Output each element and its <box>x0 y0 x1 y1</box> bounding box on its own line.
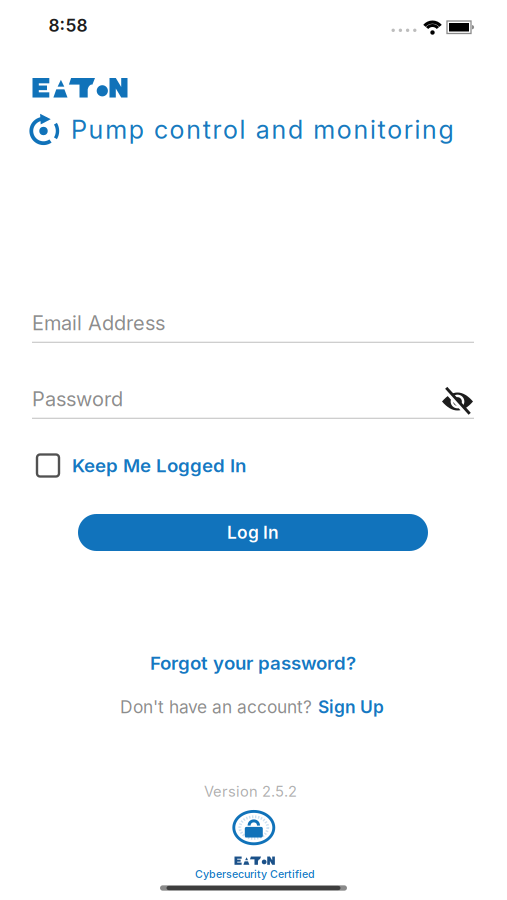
staticText: Pump control and monitoring <box>71 115 454 144</box>
staticText: Password <box>32 387 123 411</box>
staticText: Don't have an account? <box>120 697 312 717</box>
button[interactable]: Log In <box>78 514 428 551</box>
staticText: Keep Me Logged In <box>72 454 246 476</box>
button[interactable] <box>440 387 474 415</box>
staticText: Version 2.5.2 <box>204 783 297 800</box>
button[interactable]: Keep Me Logged In <box>32 454 474 476</box>
button[interactable]: Password <box>32 387 474 419</box>
button[interactable]: Forgot your password? <box>150 652 356 674</box>
staticText: Email Address <box>32 311 165 335</box>
staticText: Cybersecurity Certified <box>195 868 315 880</box>
staticText: Sign Up <box>318 697 384 717</box>
button[interactable]: Email Address <box>32 311 474 343</box>
staticText: Log In <box>227 522 279 543</box>
staticText: Forgot your password? <box>150 652 356 674</box>
staticText: 8:58 <box>48 15 87 36</box>
button[interactable]: Sign Up <box>318 697 384 717</box>
